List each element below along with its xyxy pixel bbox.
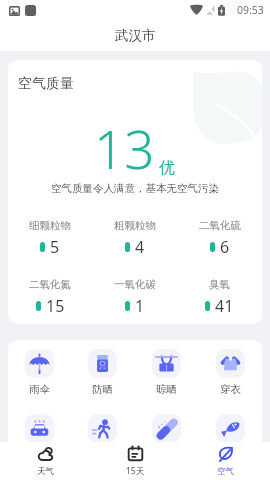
staticText: 41	[215, 295, 234, 317]
staticText: 细颗粒物	[29, 219, 71, 232]
button[interactable]: 空气	[180, 442, 270, 480]
staticText: 天气	[37, 466, 54, 477]
staticText: 穿衣	[220, 383, 241, 396]
staticText: 6	[220, 236, 230, 258]
button[interactable]: 雨伞	[8, 349, 71, 396]
staticText: 15天	[126, 465, 145, 477]
button[interactable]: 15天	[90, 442, 180, 480]
button[interactable]: 天气	[0, 442, 90, 480]
staticText: 钓鱼	[220, 448, 241, 450]
staticText: 空气质量	[18, 75, 74, 93]
staticText: 防晒	[92, 383, 113, 396]
staticText: 雨伞	[29, 383, 50, 396]
staticText: 臭氧	[209, 278, 230, 291]
button[interactable]: 洗车	[8, 414, 71, 450]
staticText: 武汉市	[115, 27, 156, 44]
button[interactable]: 穿衣	[198, 349, 262, 396]
button[interactable]: 防晒	[71, 349, 134, 396]
staticText: 粗颗粒物	[114, 219, 156, 232]
staticText: 15	[46, 295, 65, 317]
staticText: 晾晒	[156, 383, 177, 396]
staticText: 空气质量令人满意，基本无空气污染	[8, 182, 262, 195]
staticText: 优	[159, 158, 175, 178]
button[interactable]: 感冒	[134, 414, 198, 450]
button[interactable]: 钓鱼	[198, 414, 262, 450]
staticText: 洗车	[29, 448, 50, 450]
staticText: 二氧化硫	[199, 219, 241, 232]
staticText: 13	[94, 112, 155, 184]
staticText: 4	[135, 236, 145, 258]
staticText: 1	[135, 295, 145, 317]
button[interactable]: 晾晒	[134, 349, 198, 396]
staticText: 空气	[217, 466, 234, 477]
button[interactable]: 运动	[71, 414, 134, 450]
staticText: 二氧化氮	[29, 278, 71, 291]
staticText: 一氧化碳	[114, 278, 156, 291]
staticText: 09:53	[237, 3, 264, 17]
staticText: 5	[50, 236, 60, 258]
